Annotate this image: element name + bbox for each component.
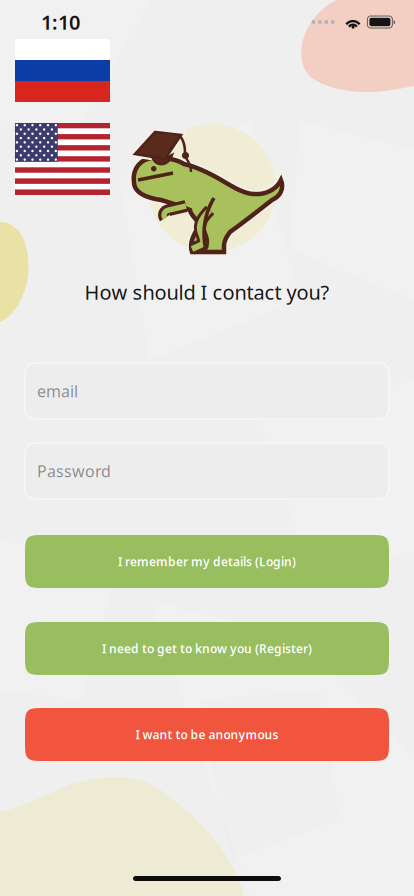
staticText: I want to be anonymous: [135, 726, 278, 742]
staticText: 1:10: [41, 9, 80, 35]
button[interactable]: I want to be anonymous: [25, 708, 389, 761]
staticText: I remember my details (Login): [118, 553, 296, 569]
staticText: Password: [37, 460, 111, 482]
button[interactable]: Password: [25, 443, 389, 499]
button[interactable]: email: [25, 363, 389, 419]
button[interactable]: I remember my details (Login): [25, 535, 389, 588]
staticText: I need to get to know you (Register): [102, 640, 312, 656]
staticText: How should I contact you?: [84, 279, 329, 305]
button[interactable]: I need to get to know you (Register): [25, 622, 389, 675]
staticText: email: [37, 380, 78, 402]
